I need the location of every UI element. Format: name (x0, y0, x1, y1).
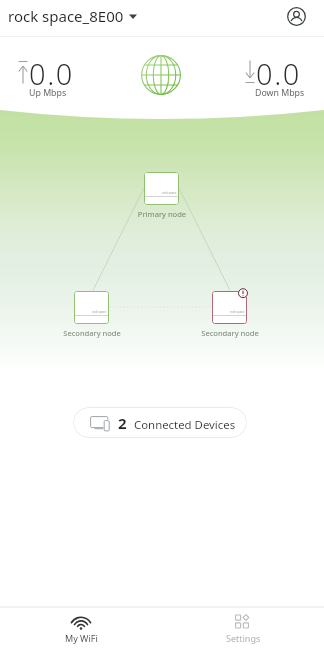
staticText: Connected Devices (134, 417, 236, 433)
staticText: Settings (226, 632, 261, 644)
button[interactable]: My WiFi (0, 608, 162, 650)
staticText: rock space_8E00 (8, 6, 124, 26)
staticText: My WiFi (65, 632, 98, 644)
button[interactable]: Account (282, 2, 310, 30)
staticText: rock space (92, 310, 107, 314)
staticText: Secondary node (32, 328, 152, 338)
button[interactable]: 0.0 (0, 54, 111, 90)
staticText: rock space (162, 191, 177, 195)
staticText: Up Mbps (29, 87, 67, 99)
button[interactable]: rock space_8E00 (7, 2, 138, 30)
button[interactable]: Secondary node (212, 291, 247, 324)
staticText: 0.0 (29, 54, 74, 90)
button[interactable]: 0.0 (218, 54, 324, 90)
button[interactable]: Primary node (144, 172, 179, 205)
staticText: Down Mbps (255, 87, 305, 99)
staticText: 2 (118, 413, 127, 433)
staticText: 0.0 (256, 54, 301, 90)
staticText: Secondary node (170, 328, 290, 338)
button[interactable]: 2 (73, 407, 247, 438)
staticText: rock space (230, 310, 245, 314)
button[interactable]: Secondary node (74, 291, 109, 324)
button[interactable]: Settings (162, 608, 324, 650)
staticText: Primary node (102, 209, 222, 219)
